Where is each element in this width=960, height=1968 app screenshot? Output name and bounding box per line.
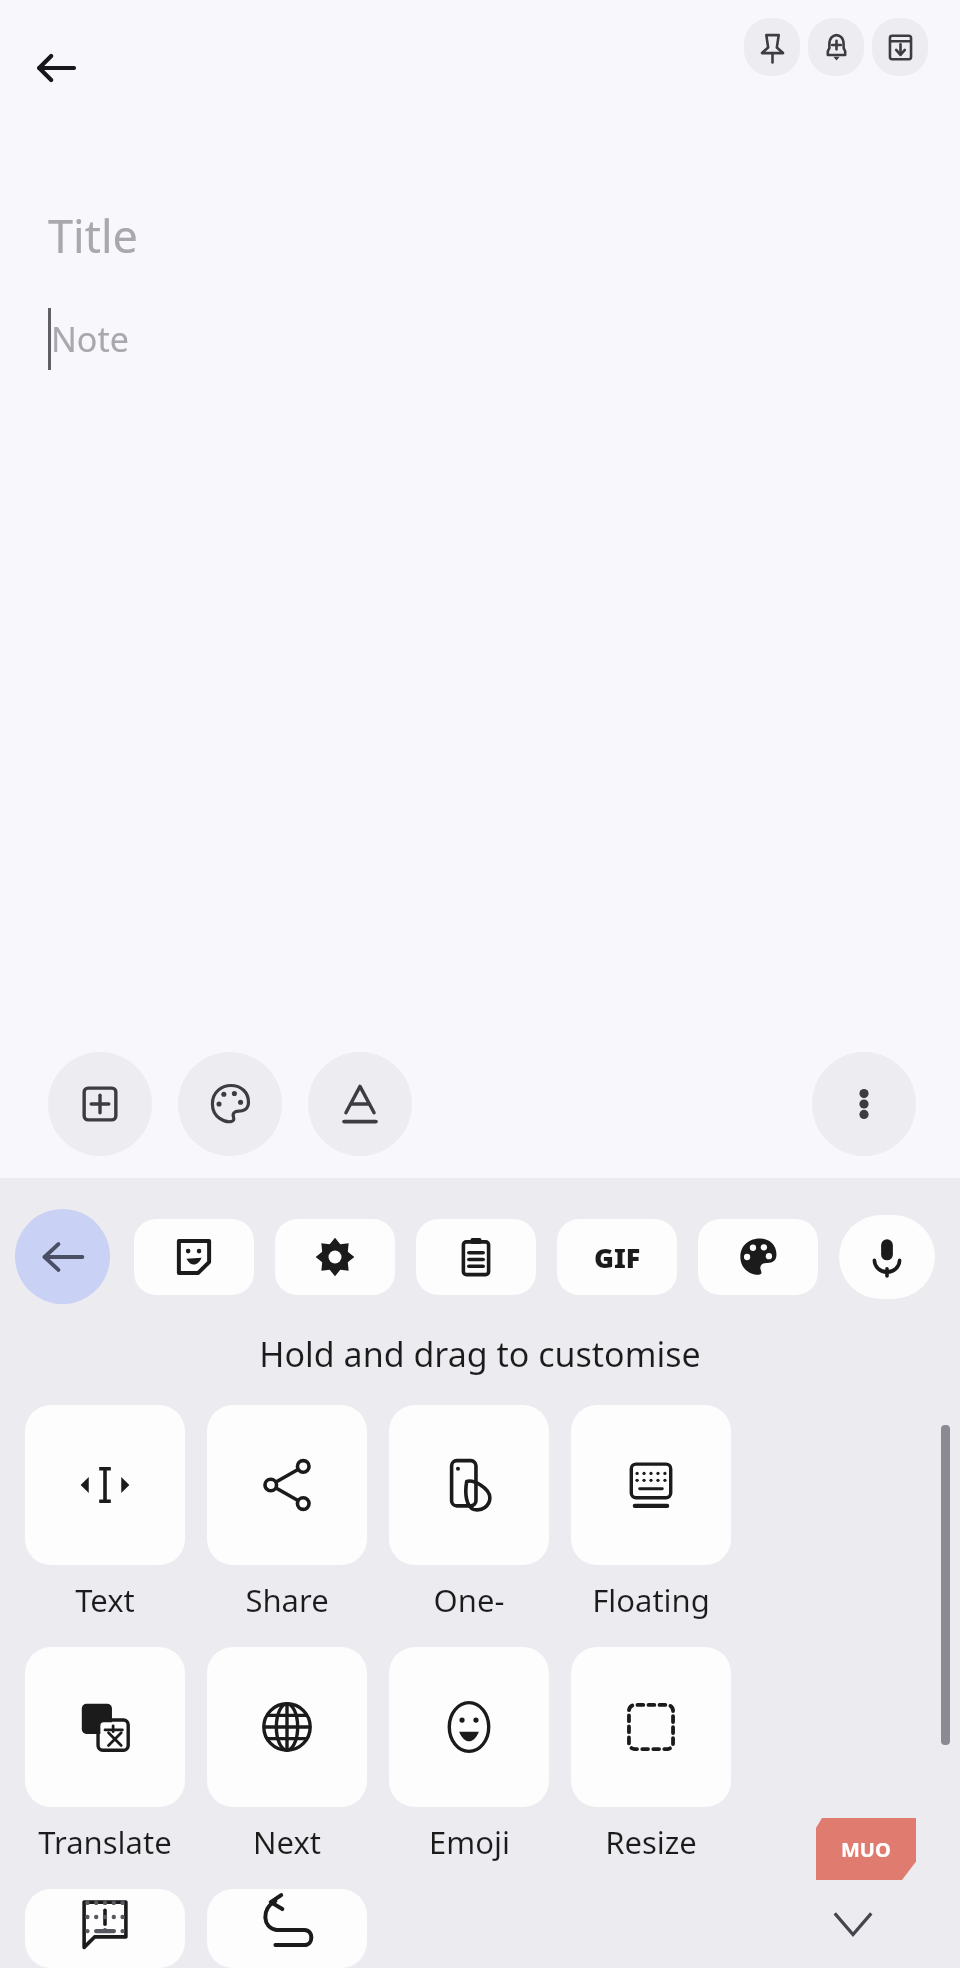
button[interactable]: Text editing: [25, 1405, 185, 1621]
button[interactable]: Hide keyboard: [818, 1888, 888, 1958]
staticText: GIF: [594, 1239, 641, 1276]
button[interactable]: Translate: [25, 1647, 185, 1863]
button[interactable]: Back: [28, 40, 84, 96]
staticText: Title: [48, 205, 138, 266]
button[interactable]: Archive: [872, 18, 928, 76]
button[interactable]: Resize: [571, 1647, 731, 1863]
staticText: Next language: [207, 1821, 367, 1863]
button[interactable]: Pin: [744, 18, 800, 76]
staticText: Emoji: [429, 1821, 510, 1863]
button[interactable]: Back: [15, 1209, 110, 1304]
button[interactable]: Switch keyboard: [72, 1884, 138, 1950]
button[interactable]: Settings: [275, 1219, 395, 1295]
button[interactable]: Stickers: [134, 1219, 254, 1295]
button[interactable]: [25, 1889, 185, 1968]
staticText: Note: [51, 316, 129, 362]
staticText: Translate: [38, 1821, 172, 1863]
button[interactable]: Next language: [207, 1647, 367, 1863]
button[interactable]: Colour: [178, 1052, 282, 1156]
staticText: Share Gboard: [207, 1579, 367, 1621]
button[interactable]: Share Gboard: [207, 1405, 367, 1621]
button[interactable]: Emoji: [389, 1647, 549, 1863]
button[interactable]: Add reminder: [808, 18, 864, 76]
staticText: Hold and drag to customise: [0, 1331, 960, 1377]
button[interactable]: Clipboard: [416, 1219, 536, 1295]
button[interactable]: Add: [48, 1052, 152, 1156]
staticText: Floating: [592, 1579, 710, 1621]
staticText: Text editing: [25, 1579, 185, 1621]
button[interactable]: Floating: [571, 1405, 731, 1621]
button[interactable]: Voice input: [839, 1215, 935, 1299]
button[interactable]: GIF: [557, 1219, 677, 1295]
button[interactable]: [207, 1889, 367, 1968]
button[interactable]: One-handed: [389, 1405, 549, 1621]
staticText: MUO: [841, 1836, 891, 1863]
button[interactable]: Themes: [698, 1219, 818, 1295]
staticText: One-handed: [389, 1579, 549, 1621]
staticText: Resize: [605, 1821, 697, 1863]
button[interactable]: More options: [812, 1052, 916, 1156]
button[interactable]: Formatting: [308, 1052, 412, 1156]
